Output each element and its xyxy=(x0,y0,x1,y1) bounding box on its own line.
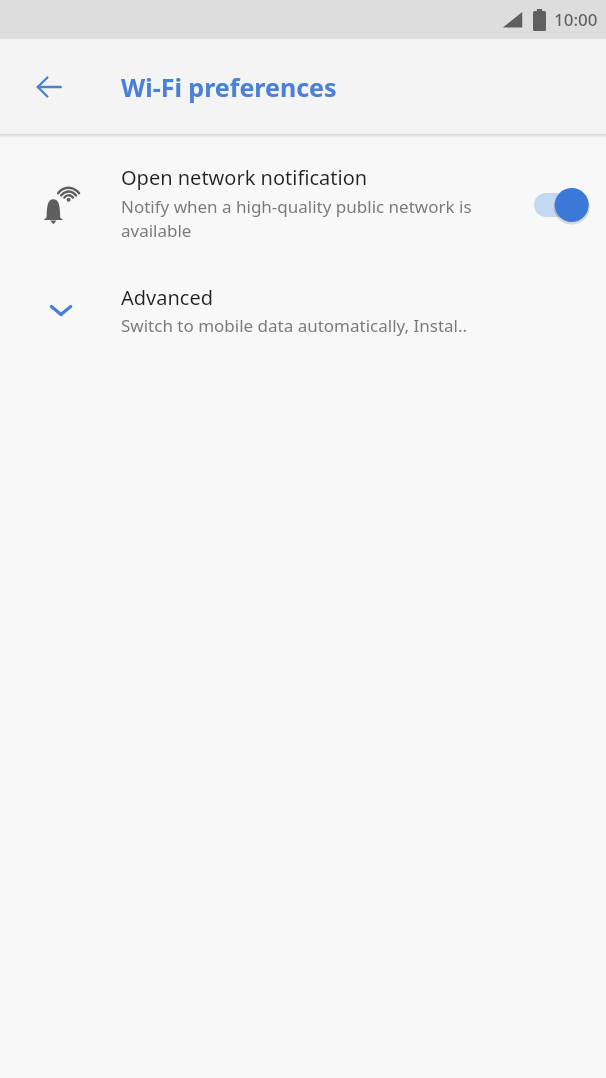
staticText: Notify when a high-quality public networ… xyxy=(121,195,518,242)
button[interactable]: Back xyxy=(22,60,76,114)
staticText: 10:00 xyxy=(554,8,598,31)
staticText: Wi-Fi preferences xyxy=(121,70,337,104)
button[interactable]: Open network notification xyxy=(0,146,606,264)
button[interactable]: Advanced xyxy=(0,264,606,356)
staticText: Advanced xyxy=(121,284,213,311)
staticText: Open network notification xyxy=(121,164,368,191)
button[interactable]: Open network notification toggle xyxy=(518,175,606,235)
staticText: Switch to mobile data automatically, Ins… xyxy=(121,314,468,337)
